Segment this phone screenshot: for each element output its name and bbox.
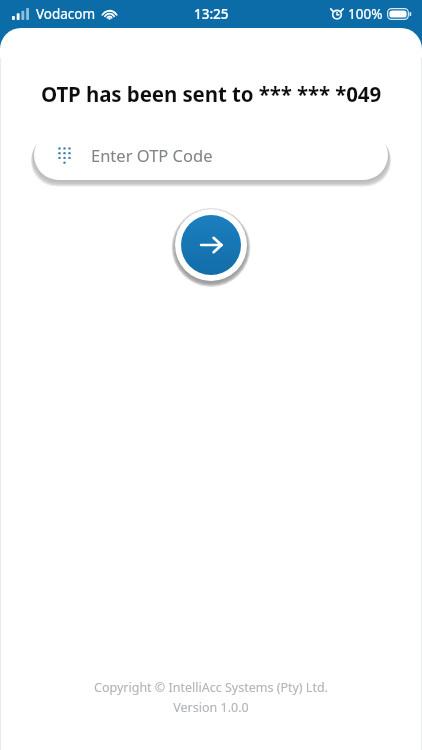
- staticText: OTP has been sent to *** *** *049: [12, 80, 410, 108]
- button[interactable]: Enter OTP Code: [34, 130, 388, 180]
- staticText: 100%: [348, 5, 383, 23]
- staticText: Version 1.0.0: [0, 699, 422, 716]
- staticText: 13:25: [194, 5, 229, 23]
- staticText: Vodacom: [36, 5, 96, 23]
- staticText: Enter OTP Code: [91, 144, 213, 166]
- button[interactable]: Submit OTP: [175, 209, 247, 281]
- staticText: Copyright © IntelliAcc Systems (Pty) Ltd…: [0, 679, 422, 696]
